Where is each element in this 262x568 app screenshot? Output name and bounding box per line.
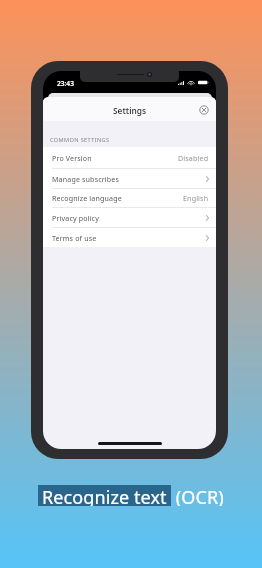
button[interactable]: Recognize language [43, 188, 216, 208]
button[interactable]: Privacy policy [43, 208, 216, 228]
button[interactable]: Terms of use [43, 228, 216, 247]
staticText: Privacy policy [52, 213, 99, 223]
button[interactable]: Manage subscribes [43, 169, 216, 189]
button[interactable]: Close [199, 105, 209, 115]
staticText: English [183, 193, 209, 203]
staticText: Recognize language [52, 193, 122, 203]
staticText: COMMON SETTINGS [50, 136, 110, 144]
staticText: Settings [113, 105, 147, 116]
staticText: Terms of use [52, 233, 97, 243]
staticText: 23:43 [57, 79, 74, 88]
button[interactable]: Pro Version [43, 147, 216, 169]
staticText: (OCR) [171, 485, 224, 506]
staticText: Manage subscribes [52, 174, 120, 184]
staticText: Pro Version [52, 153, 92, 163]
staticText: Disabled [178, 153, 209, 163]
staticText: Recognize text [42, 485, 167, 506]
